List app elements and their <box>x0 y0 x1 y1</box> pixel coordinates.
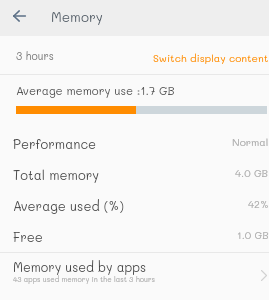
staticText: Memory used by apps <box>13 259 147 275</box>
button[interactable]: Memory used by apps <box>0 254 269 300</box>
staticText: Switch display content <box>153 51 269 65</box>
staticText: Average memory use :1.7 GB <box>16 83 175 98</box>
staticText: Average used (%) <box>13 197 124 214</box>
button[interactable]: Average used (%) <box>0 188 269 219</box>
staticText: Memory <box>51 8 103 26</box>
staticText: Normal <box>232 135 269 149</box>
button[interactable]: Free <box>0 219 269 250</box>
staticText: Performance <box>13 135 97 152</box>
button[interactable]: Switch display content <box>153 51 269 65</box>
button[interactable]: Back <box>6 3 32 29</box>
staticText: 3 hours <box>16 49 54 63</box>
button[interactable]: Total memory <box>0 157 269 188</box>
staticText: 1.0 GB <box>237 228 269 242</box>
button[interactable]: Performance <box>0 126 269 157</box>
staticText: 4.0 GB <box>235 166 269 180</box>
staticText: Total memory <box>13 166 99 183</box>
other: Open <box>258 269 269 281</box>
staticText: 42% <box>248 197 269 211</box>
staticText: 43 apps used memory in the last 3 hours <box>13 274 155 283</box>
staticText: Free <box>13 228 43 245</box>
